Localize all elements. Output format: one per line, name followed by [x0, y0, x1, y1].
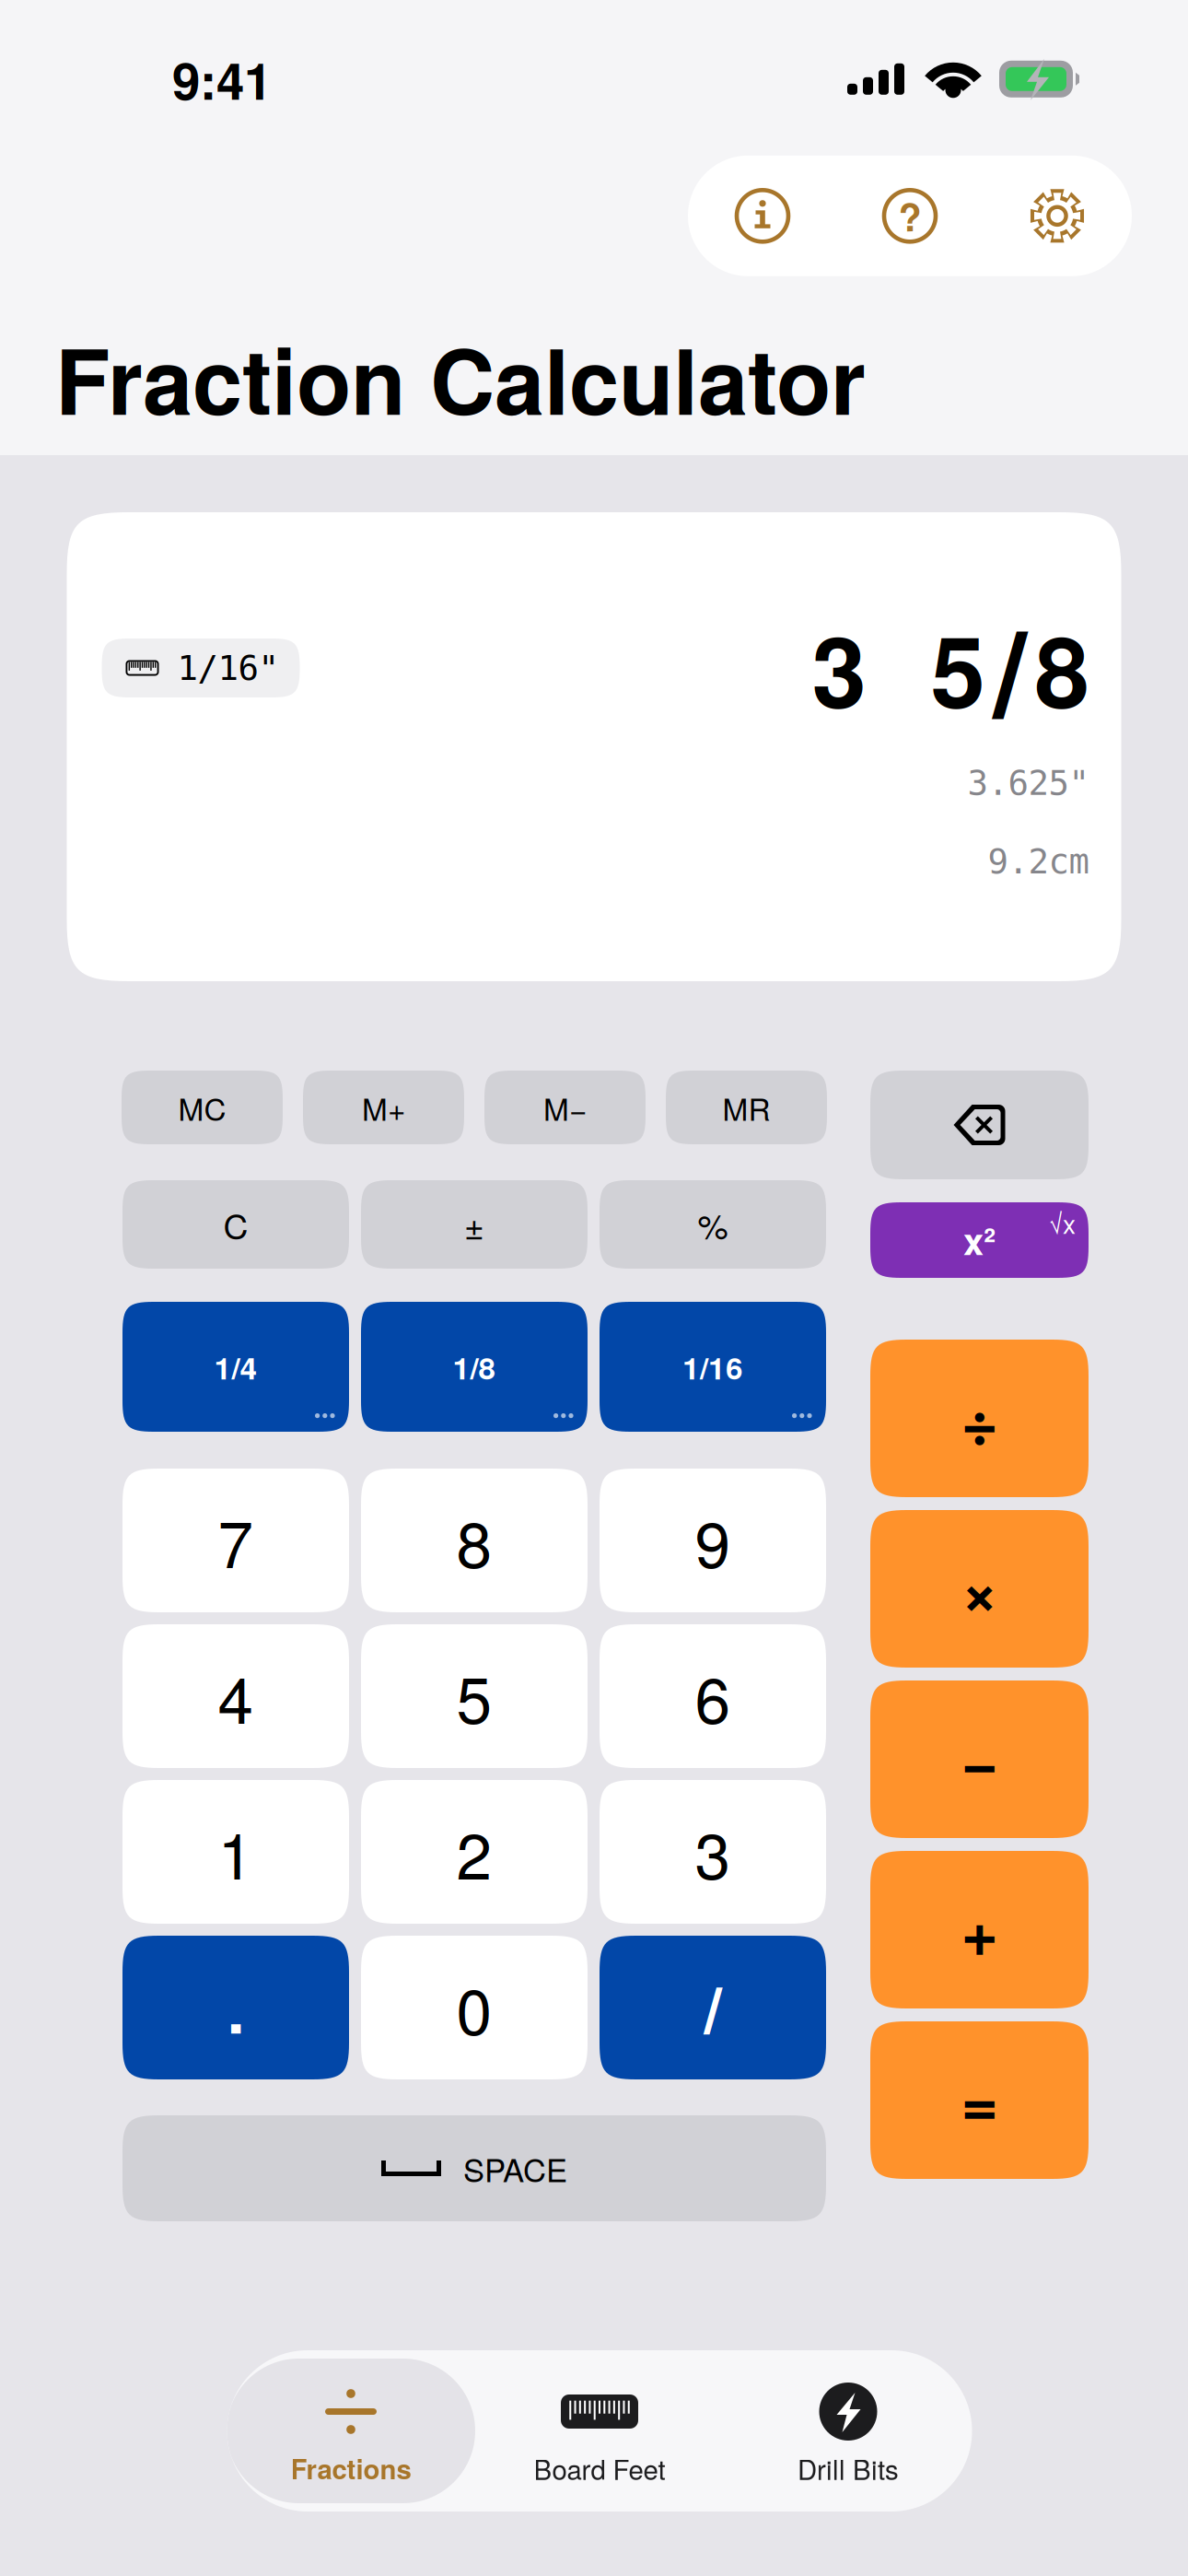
- button[interactable]: 6: [600, 1624, 826, 1768]
- staticText: /: [704, 1962, 722, 2053]
- staticText: 1/4: [214, 1345, 257, 1389]
- staticText: 3: [695, 1806, 731, 1898]
- button[interactable]: +: [870, 1851, 1089, 2008]
- button[interactable]: MC: [122, 1071, 283, 1144]
- staticText: Drill Bits: [798, 2449, 899, 2488]
- staticText: 1/16": [177, 648, 279, 688]
- staticText: 5: [931, 598, 985, 738]
- staticText: C: [223, 1200, 248, 1249]
- staticText: 9: [695, 1495, 731, 1586]
- staticText: Board Feet: [534, 2449, 665, 2488]
- staticText: Fraction Calculator: [55, 314, 866, 442]
- staticText: 9:41: [172, 43, 272, 115]
- button[interactable]: MR: [666, 1071, 827, 1144]
- button[interactable]: 4: [122, 1624, 349, 1768]
- staticText: √x: [1049, 1204, 1076, 1241]
- button[interactable]: 2: [361, 1780, 588, 1924]
- staticText: 0: [456, 1962, 492, 2053]
- button[interactable]: C: [122, 1180, 349, 1269]
- button[interactable]: 1/8: [361, 1302, 588, 1432]
- staticText: SPACE: [463, 2145, 567, 2191]
- button[interactable]: Board Feet: [475, 2350, 724, 2512]
- button[interactable]: %: [600, 1180, 826, 1269]
- staticText: /: [993, 582, 1026, 754]
- staticText: ÷: [961, 1373, 998, 1464]
- button[interactable]: Settings: [984, 156, 1131, 276]
- staticText: +: [961, 1884, 998, 1975]
- staticText: ×: [961, 1543, 998, 1635]
- button[interactable]: =: [870, 2021, 1089, 2179]
- staticText: 6: [695, 1650, 731, 1742]
- button[interactable]: /: [600, 1936, 826, 2079]
- staticText: 1: [218, 1806, 254, 1898]
- button[interactable]: 9: [600, 1469, 826, 1612]
- staticText: Fractions: [291, 2449, 411, 2488]
- staticText: M−: [543, 1085, 587, 1129]
- button[interactable]: M−: [484, 1071, 646, 1144]
- button[interactable]: 5: [361, 1624, 588, 1768]
- button[interactable]: Fractions: [227, 2350, 475, 2512]
- button[interactable]: Drill Bits: [724, 2350, 973, 2512]
- button[interactable]: ±: [361, 1180, 588, 1269]
- button[interactable]: SPACE: [122, 2115, 826, 2221]
- button[interactable]: 1/4: [122, 1302, 349, 1432]
- staticText: .: [227, 1962, 245, 2053]
- staticText: M+: [362, 1085, 405, 1129]
- staticText: MC: [178, 1085, 226, 1129]
- staticText: 4: [218, 1650, 254, 1742]
- staticText: x²: [963, 1214, 996, 1267]
- button[interactable]: 1: [122, 1780, 349, 1924]
- button[interactable]: 1/16: [600, 1302, 826, 1432]
- button[interactable]: 7: [122, 1469, 349, 1612]
- staticText: 5: [456, 1650, 492, 1742]
- button[interactable]: −: [870, 1680, 1089, 1838]
- button[interactable]: Info: [689, 156, 836, 276]
- staticText: %: [698, 1200, 728, 1249]
- button[interactable]: ×: [870, 1510, 1089, 1668]
- staticText: −: [961, 1714, 998, 1805]
- staticText: 1/8: [453, 1345, 496, 1389]
- button[interactable]: .: [122, 1936, 349, 2079]
- button[interactable]: x²: [870, 1202, 1089, 1278]
- button[interactable]: ÷: [870, 1340, 1089, 1497]
- staticText: 8: [456, 1495, 492, 1586]
- staticText: 9.2cm: [988, 842, 1089, 882]
- staticText: MR: [722, 1085, 770, 1129]
- button[interactable]: Help: [836, 156, 984, 276]
- staticText: 2: [456, 1806, 492, 1898]
- staticText: 8: [1035, 598, 1089, 738]
- staticText: 1/16: [682, 1345, 743, 1389]
- staticText: 3: [812, 598, 866, 738]
- button[interactable]: 3: [600, 1780, 826, 1924]
- staticText: ±: [464, 1200, 484, 1249]
- button[interactable]: M+: [303, 1071, 464, 1144]
- staticText: 3.625": [967, 763, 1089, 803]
- staticText: ?: [898, 189, 921, 243]
- staticText: 7: [218, 1495, 254, 1586]
- button[interactable]: Delete: [870, 1071, 1089, 1179]
- staticText: =: [961, 2054, 998, 2146]
- button[interactable]: 0: [361, 1936, 588, 2079]
- button[interactable]: 8: [361, 1469, 588, 1612]
